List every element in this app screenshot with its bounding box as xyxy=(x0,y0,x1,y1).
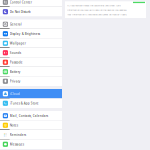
staticText: Notes xyxy=(10,123,18,127)
button[interactable]: Reminders xyxy=(0,130,62,139)
button[interactable]: Mail, Contacts, Calendars xyxy=(0,111,62,120)
button[interactable]: Control Center xyxy=(0,0,62,7)
staticText: Privacy xyxy=(10,79,21,83)
button[interactable]: Do Not Disturb xyxy=(0,7,62,16)
staticText: Control Center xyxy=(10,0,32,4)
staticText: information you save up to date on the d… xyxy=(67,8,127,11)
staticText: Battery xyxy=(10,70,21,74)
staticText: Display & Brightness xyxy=(10,32,40,36)
button[interactable]: Notes xyxy=(0,120,62,130)
staticText: Messages xyxy=(10,142,24,146)
button[interactable]: Battery xyxy=(0,67,62,76)
button[interactable]: Wallpaper xyxy=(0,38,62,48)
staticText: iTunes & App Store xyxy=(10,101,39,105)
staticText: iCloud Keychain keeps the passwords and … xyxy=(67,4,120,7)
button[interactable]: Passcode xyxy=(0,57,62,67)
button[interactable]: iTunes & App Store xyxy=(0,98,62,108)
staticText: Reminders xyxy=(10,133,26,137)
staticText: Your information is encrypted and cannot… xyxy=(67,13,127,16)
button[interactable]: Display & Brightness xyxy=(0,29,62,38)
staticText: General xyxy=(10,22,22,26)
button[interactable]: Messages xyxy=(0,139,62,149)
staticText: Do Not Disturb xyxy=(10,10,31,14)
button[interactable]: Sounds xyxy=(0,48,62,57)
staticText: Wallpaper xyxy=(10,41,26,45)
button[interactable]: General xyxy=(0,19,62,29)
staticText: Mail, Contacts, Calendars xyxy=(10,114,48,118)
staticText: Sounds xyxy=(10,51,21,55)
staticText: iCloud xyxy=(10,92,20,96)
staticText: Passcode xyxy=(10,60,23,64)
button[interactable]: iCloud xyxy=(0,89,62,98)
button[interactable]: Privacy xyxy=(0,76,62,86)
